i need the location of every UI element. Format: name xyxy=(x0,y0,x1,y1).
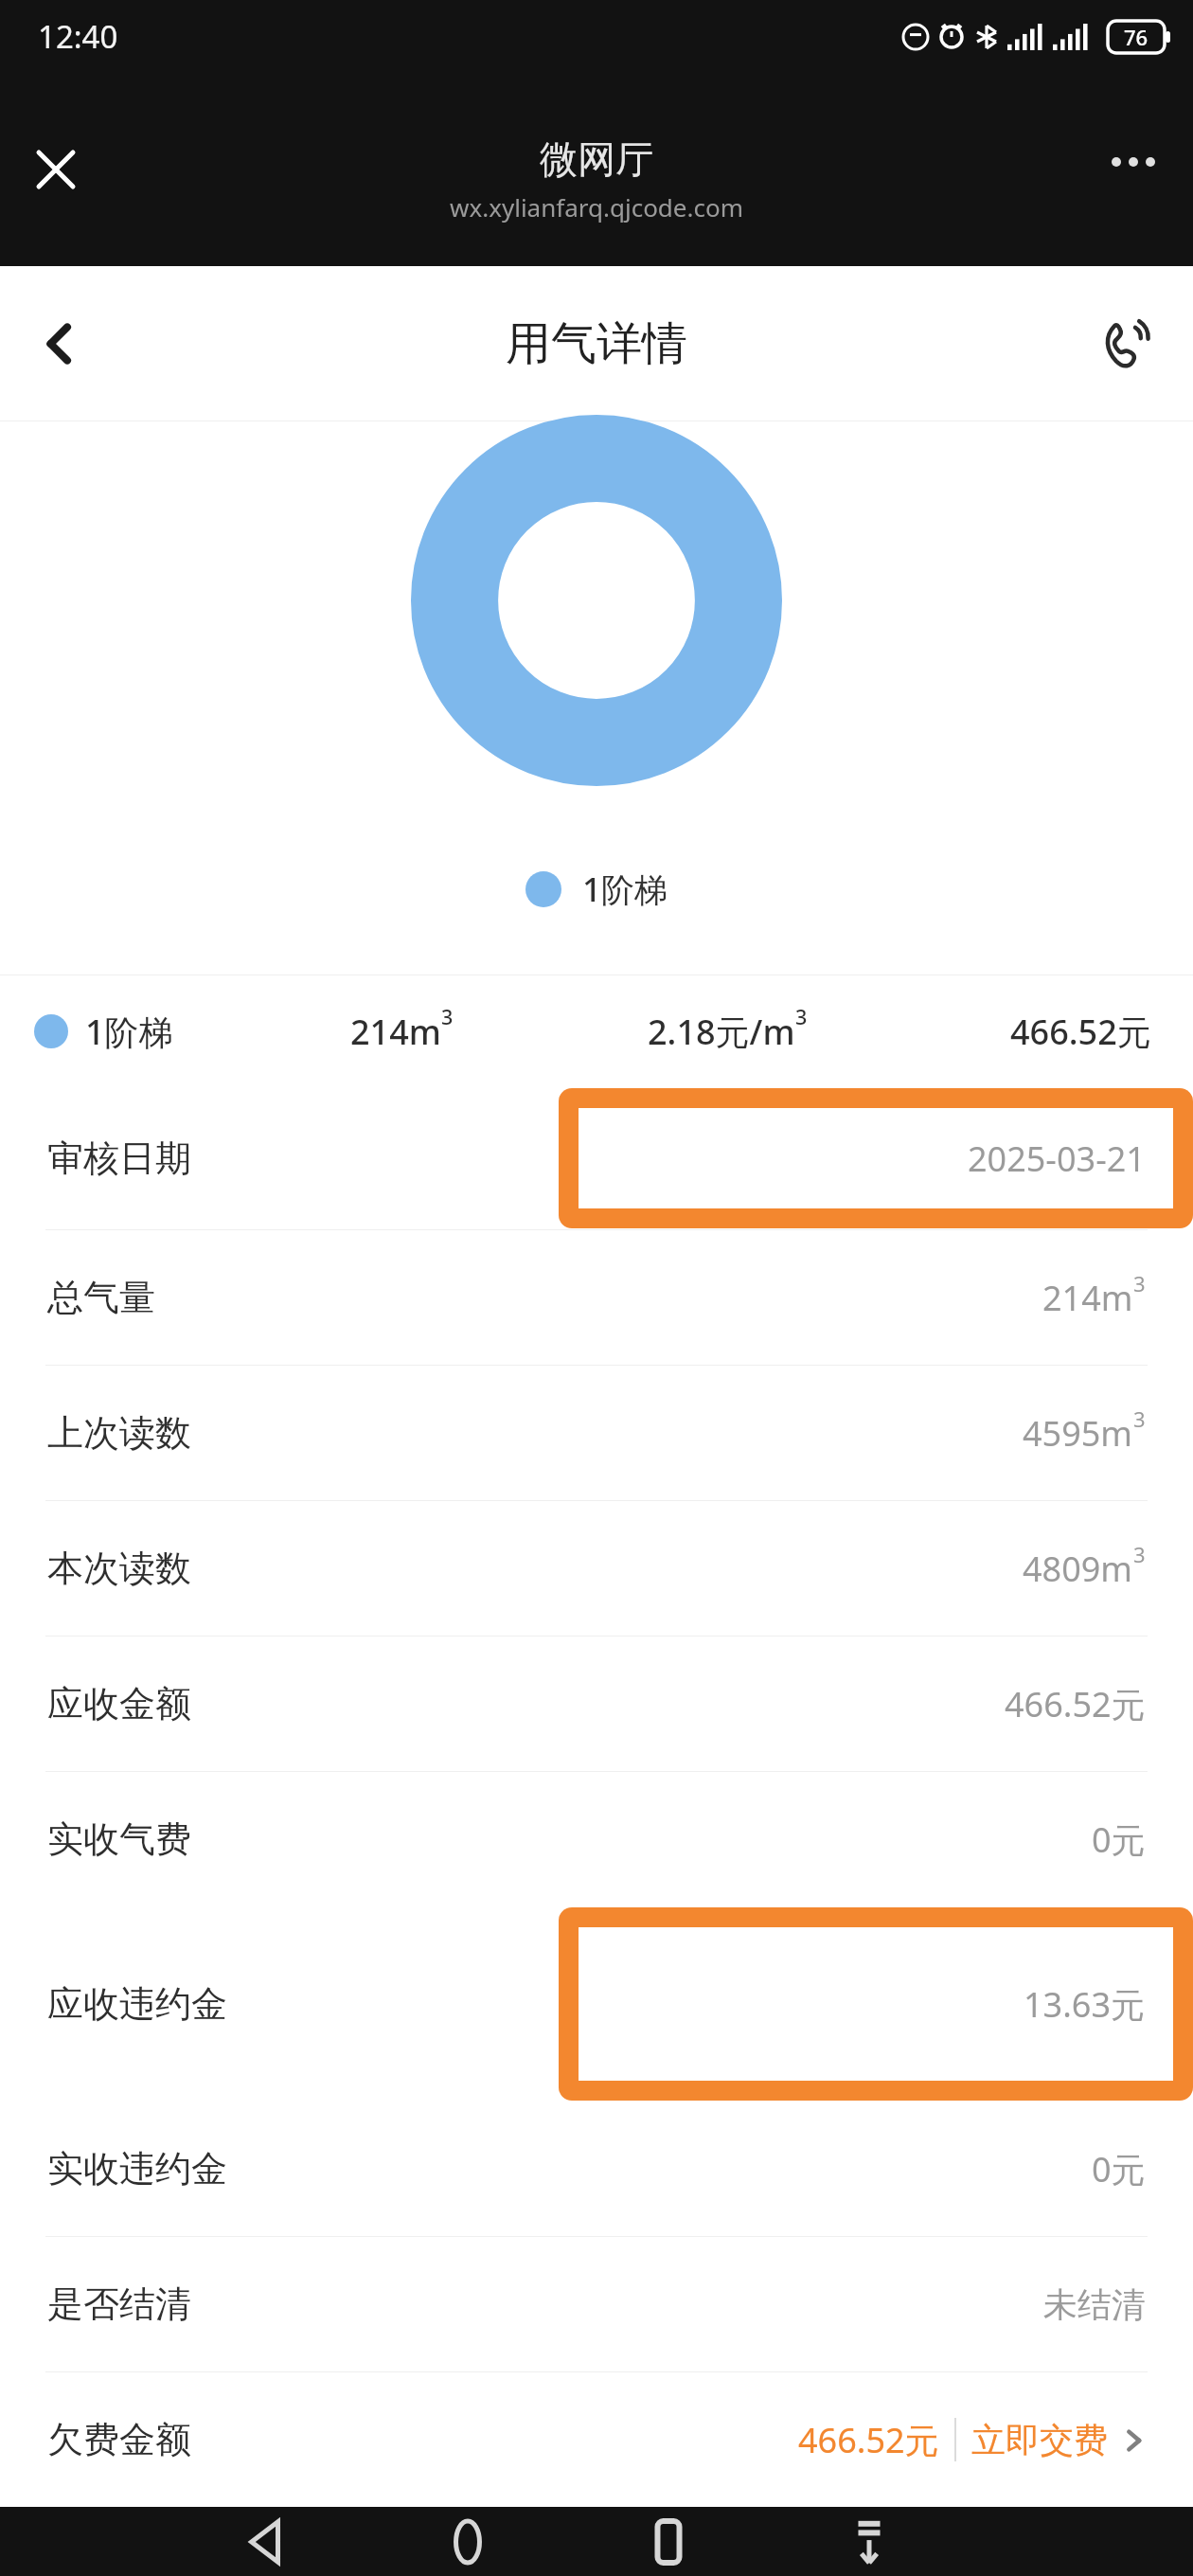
staticText: 214m xyxy=(350,1009,441,1055)
staticText: 实收气费 xyxy=(47,1816,191,1862)
button[interactable]: Back xyxy=(220,2507,314,2576)
button[interactable]: 实收违约金 xyxy=(0,2102,1193,2236)
staticText: 微网厅 xyxy=(540,135,653,183)
staticText: 应收违约金 xyxy=(47,1981,227,2027)
button[interactable]: Recent apps xyxy=(621,2507,716,2576)
staticText: 76 xyxy=(1124,23,1148,51)
staticText: 0元 xyxy=(1092,1816,1146,1863)
staticText: 3 xyxy=(441,1003,454,1030)
button[interactable]: 应收金额 xyxy=(0,1637,1193,1771)
staticText: 12:40 xyxy=(38,15,118,58)
staticText: 3 xyxy=(795,1003,808,1030)
button[interactable]: Hide keyboard xyxy=(822,2507,917,2576)
staticText: 应收金额 xyxy=(47,1681,191,1726)
button[interactable]: More options xyxy=(1091,119,1176,205)
staticText: 214m xyxy=(1042,1275,1133,1321)
staticText: 审核日期 xyxy=(47,1136,191,1181)
button[interactable]: Call customer service xyxy=(1079,298,1170,389)
staticText: 未结清 xyxy=(1043,2283,1146,2326)
staticText: 466.52元 xyxy=(1005,1681,1146,1727)
button[interactable]: Home xyxy=(420,2507,515,2576)
button[interactable]: 应收违约金 xyxy=(0,1906,1193,2102)
button[interactable]: 是否结清 xyxy=(0,2237,1193,2371)
staticText: 立即交费 xyxy=(971,2419,1108,2461)
button[interactable]: Close xyxy=(13,127,98,212)
staticText: 本次读数 xyxy=(47,1546,191,1591)
button[interactable]: 立即交费 xyxy=(956,2419,1146,2461)
staticText: 3 xyxy=(1133,1269,1146,1297)
staticText: 2.18元/m xyxy=(648,1009,795,1055)
button[interactable]: 本次读数 xyxy=(0,1501,1193,1636)
staticText: wx.xylianfarq.qjcode.com xyxy=(450,190,743,224)
button[interactable]: 审核日期 xyxy=(0,1087,1193,1229)
staticText: 0元 xyxy=(1092,2146,1146,2192)
staticText: 欠费金额 xyxy=(47,2417,191,2462)
staticText: 1阶梯 xyxy=(582,867,668,912)
button[interactable]: 1阶梯 xyxy=(0,975,1193,1087)
button[interactable]: 实收气费 xyxy=(0,1772,1193,1906)
staticText: 2025-03-21 xyxy=(968,1136,1146,1182)
staticText: 1阶梯 xyxy=(85,1009,173,1055)
staticText: 总气量 xyxy=(47,1275,155,1320)
staticText: 3 xyxy=(1133,1540,1146,1568)
staticText: 466.52元 xyxy=(1010,1009,1151,1055)
staticText: 4595m xyxy=(1023,1410,1133,1457)
button[interactable]: 1阶梯 xyxy=(525,867,668,912)
staticText: 3 xyxy=(1133,1404,1146,1433)
button[interactable]: 总气量 xyxy=(0,1230,1193,1365)
staticText: 实收违约金 xyxy=(47,2146,227,2191)
button[interactable]: Back xyxy=(15,298,106,389)
staticText: 是否结清 xyxy=(47,2281,191,2327)
staticText: 上次读数 xyxy=(47,1410,191,1456)
staticText: 4809m xyxy=(1023,1546,1133,1592)
staticText: 13.63元 xyxy=(1024,1981,1146,2028)
staticText: 用气详情 xyxy=(506,315,687,372)
button[interactable]: 上次读数 xyxy=(0,1366,1193,1500)
staticText: 466.52元 xyxy=(798,2417,939,2463)
